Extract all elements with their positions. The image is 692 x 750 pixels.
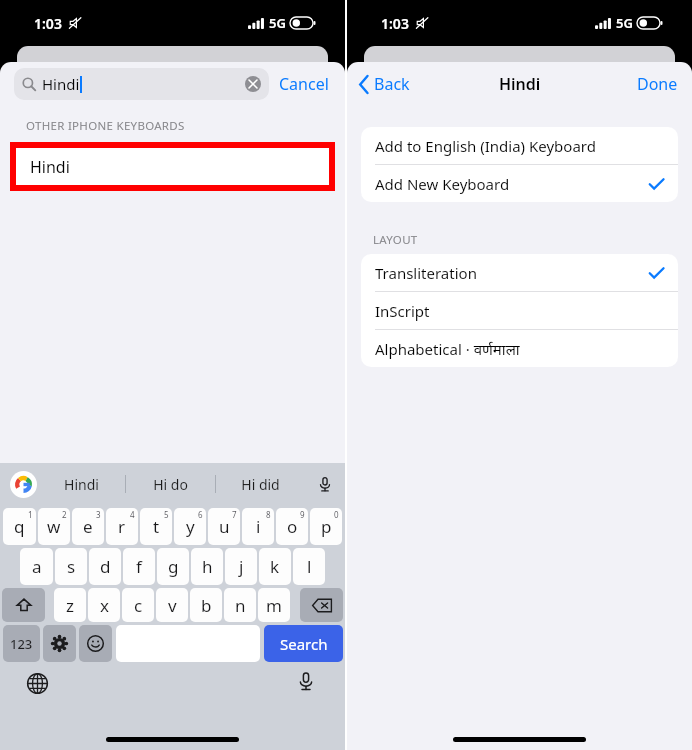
button[interactable]: b	[190, 588, 222, 622]
staticText: Hindi	[30, 156, 70, 178]
button[interactable]: q	[3, 508, 36, 545]
staticText: 5	[164, 509, 169, 520]
button[interactable]: Hi do	[126, 463, 215, 505]
button[interactable]: InScript	[361, 292, 678, 329]
button[interactable]: Hindi	[37, 463, 125, 505]
staticText: q	[14, 515, 25, 538]
staticText: w	[47, 515, 61, 538]
staticText: Hindi	[499, 73, 541, 95]
button[interactable]: Hindi	[16, 148, 329, 185]
staticText: Hindi	[64, 475, 99, 494]
button[interactable]: v	[156, 588, 188, 622]
staticText: 3	[96, 509, 101, 520]
staticText: e	[83, 515, 93, 538]
staticText: Done	[637, 73, 678, 95]
button[interactable]: t	[140, 508, 172, 545]
staticText: k	[270, 555, 280, 578]
button[interactable]: Hi did	[216, 463, 305, 505]
staticText: OTHER IPHONE KEYBOARDS	[26, 118, 185, 134]
button[interactable]: p	[310, 508, 342, 545]
button[interactable]: Backspace	[300, 588, 343, 622]
staticText: 123	[10, 635, 33, 653]
staticText: 9	[300, 509, 305, 520]
button[interactable]: Done	[623, 67, 692, 101]
button[interactable]: m	[258, 588, 290, 622]
staticText: 7	[232, 509, 237, 520]
button[interactable]: a	[20, 548, 53, 585]
staticText: r	[118, 515, 126, 538]
button[interactable]: Google	[10, 471, 37, 498]
button[interactable]: Add to English (India) Keyboard	[361, 127, 678, 164]
button[interactable]: Emoji	[79, 625, 112, 662]
button[interactable]: c	[122, 588, 154, 622]
staticText: InScript	[375, 301, 430, 321]
button[interactable]: k	[259, 548, 291, 585]
button[interactable]: l	[293, 548, 325, 585]
button[interactable]: Add New Keyboard	[361, 165, 678, 202]
button[interactable]: Settings	[43, 625, 76, 662]
button[interactable]: o	[276, 508, 308, 545]
button[interactable]: z	[54, 588, 86, 622]
staticText: Add New Keyboard	[375, 174, 510, 194]
staticText: 4	[130, 509, 135, 520]
staticText: 5G	[269, 14, 286, 32]
staticText: 8	[266, 509, 271, 520]
button[interactable]: Voice input	[293, 668, 319, 694]
staticText: o	[287, 515, 298, 538]
staticText: Add to English (India) Keyboard	[375, 136, 596, 156]
staticText: Back	[374, 73, 410, 95]
staticText: 6	[198, 509, 203, 520]
button[interactable]: Shift	[2, 588, 45, 622]
button[interactable]: Hindi	[14, 68, 269, 100]
button[interactable]: r	[106, 508, 138, 545]
button[interactable]: i	[242, 508, 274, 545]
button[interactable]: e	[72, 508, 104, 545]
staticText: v	[168, 594, 177, 617]
staticText: z	[66, 594, 74, 617]
button[interactable]: Change keyboard	[24, 670, 50, 696]
staticText: Alphabetical · वर्णमाला	[375, 339, 520, 359]
staticText: 1:03	[34, 14, 62, 33]
button[interactable]: x	[88, 588, 120, 622]
staticText: LAYOUT	[373, 232, 418, 248]
button[interactable]: n	[224, 588, 256, 622]
button[interactable]: u	[208, 508, 240, 545]
button[interactable]: y	[174, 508, 206, 545]
staticText: 2	[62, 509, 67, 520]
staticText: 1:03	[381, 14, 409, 33]
button[interactable]: Voice input	[305, 463, 345, 505]
staticText: b	[201, 594, 212, 617]
staticText: Hi did	[241, 475, 280, 494]
button[interactable]: f	[123, 548, 155, 585]
button[interactable]: Cancel	[269, 67, 331, 101]
button[interactable]: g	[157, 548, 189, 585]
staticText: s	[67, 555, 76, 578]
staticText: m	[266, 594, 282, 617]
staticText: h	[202, 555, 213, 578]
staticText: t	[153, 515, 160, 538]
button[interactable]: Transliteration	[361, 254, 678, 291]
button[interactable]: Alphabetical · वर्णमाला	[361, 330, 678, 367]
staticText: f	[136, 555, 142, 578]
button[interactable]: Back	[347, 67, 420, 101]
staticText: c	[134, 594, 143, 617]
button[interactable]: d	[89, 548, 121, 585]
button[interactable]: h	[191, 548, 223, 585]
button[interactable]: s	[55, 548, 87, 585]
button[interactable]: Clear text	[245, 76, 261, 92]
staticText: d	[100, 555, 111, 578]
staticText: Hi do	[153, 475, 188, 494]
button[interactable]: w	[38, 508, 70, 545]
staticText: l	[307, 555, 312, 578]
staticText: 5G	[616, 14, 633, 32]
staticText: g	[168, 555, 179, 578]
button[interactable]: 123	[3, 625, 40, 662]
button[interactable]: Search	[264, 625, 343, 662]
button[interactable]: j	[225, 548, 257, 585]
staticText: 1	[28, 509, 33, 520]
staticText: y	[186, 515, 195, 538]
staticText: Transliteration	[375, 263, 477, 283]
staticText: Cancel	[279, 73, 329, 95]
staticText: 0	[334, 509, 339, 520]
